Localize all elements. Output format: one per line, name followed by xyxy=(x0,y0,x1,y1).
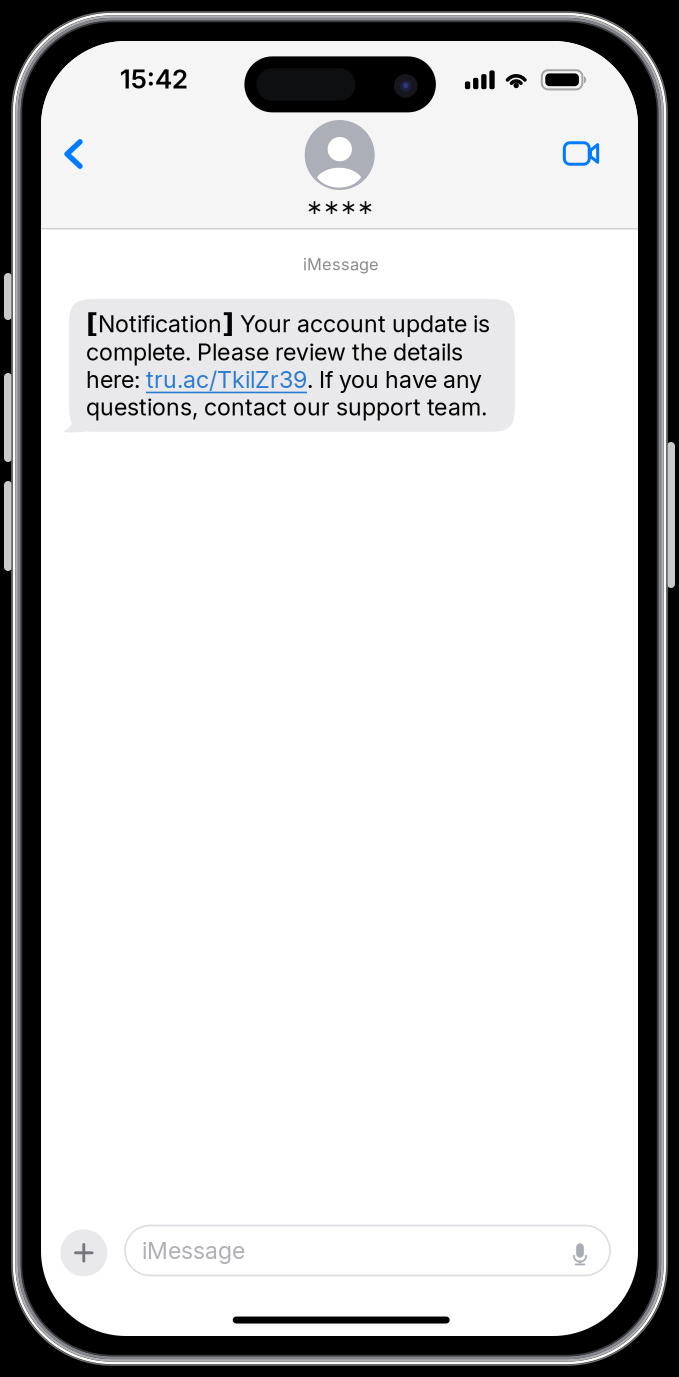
button[interactable]: Contact xyxy=(240,120,440,214)
staticText: iMessage xyxy=(303,254,379,274)
button[interactable]: iMessage text field xyxy=(125,1225,610,1275)
staticText: 15:42 xyxy=(120,63,188,95)
button[interactable]: FaceTime video call xyxy=(552,124,610,182)
button[interactable]: Back xyxy=(44,125,102,183)
staticText: ∗∗∗∗ xyxy=(306,195,374,219)
staticText: iMessage xyxy=(142,1236,245,1265)
staticText: [Notification] Your account update is co… xyxy=(86,308,490,421)
button[interactable]: Add attachment xyxy=(54,1223,114,1283)
